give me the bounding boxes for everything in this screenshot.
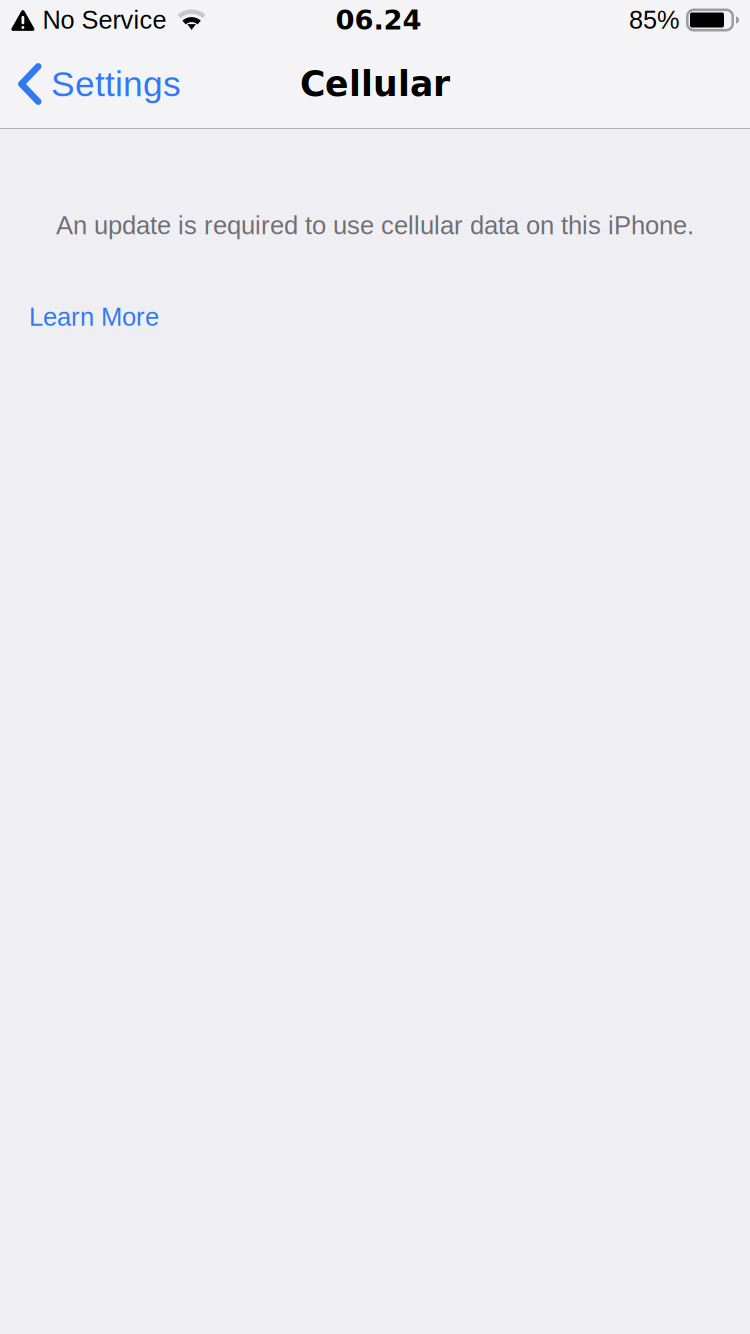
staticText: An update is required to use cellular da… bbox=[56, 211, 694, 240]
staticText: Learn More bbox=[29, 303, 159, 331]
button[interactable]: Learn More bbox=[0, 292, 179, 342]
staticText: Cellular bbox=[300, 64, 450, 104]
staticText: 06.24 bbox=[335, 4, 421, 36]
staticText: Settings bbox=[51, 64, 181, 104]
button[interactable]: Settings bbox=[0, 40, 195, 128]
staticText: No Service bbox=[43, 6, 167, 34]
staticText: 85% bbox=[629, 6, 680, 34]
